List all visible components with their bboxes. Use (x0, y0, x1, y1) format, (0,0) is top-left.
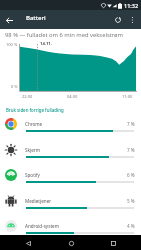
button[interactable]: Home (56, 236, 86, 250)
button[interactable]: Skjerm (0, 132, 141, 158)
staticText: 22:00 (22, 94, 33, 99)
staticText: 100 % (6, 42, 18, 47)
button[interactable]: Android-system (0, 208, 141, 234)
staticText: 5 % (127, 198, 135, 204)
button[interactable]: Back (3, 14, 15, 26)
staticText: 14.11. (40, 41, 52, 47)
button[interactable]: Chrome (0, 106, 141, 132)
staticText: 6 % (127, 172, 135, 178)
button[interactable]: Recents (98, 236, 128, 250)
staticText: 11:32 (124, 2, 139, 9)
staticText: Spotify (25, 172, 40, 178)
button[interactable]: Back (13, 236, 43, 250)
staticText: 98 % — fulladet om 6 min med vekselstrøm (5, 31, 123, 39)
staticText: Batteri (26, 14, 46, 22)
staticText: 7 % (127, 121, 135, 127)
staticText: Medietjener (25, 198, 52, 204)
staticText: 04:00 (67, 94, 78, 99)
staticText: Skjerm (25, 147, 40, 153)
button[interactable]: More options (126, 14, 138, 26)
button[interactable]: Refresh (112, 14, 124, 26)
staticText: Bruk siden forrige fullading (6, 107, 64, 113)
button[interactable]: Spotify (0, 157, 141, 183)
staticText: 7 % (127, 147, 135, 153)
button[interactable]: Medietjener (0, 183, 141, 209)
staticText: Android-system (25, 223, 59, 229)
staticText: 0 % (11, 84, 18, 89)
staticText: 4 % (127, 223, 135, 229)
staticText: 11:00 (122, 94, 133, 99)
staticText: Chrome (25, 121, 43, 127)
